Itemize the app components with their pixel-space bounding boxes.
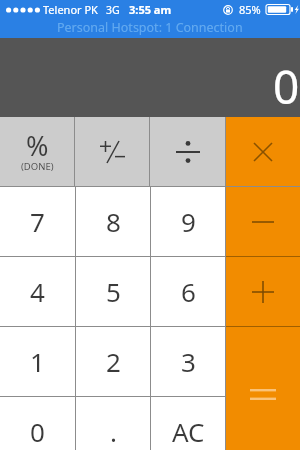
button[interactable]: 7 <box>0 187 75 256</box>
other: Minus <box>252 217 274 227</box>
staticText: Personal Hotspot: 1 Connection <box>57 19 243 36</box>
staticText: 3G <box>106 3 120 17</box>
staticText: 7 <box>30 204 45 239</box>
staticText: 3:55 am <box>129 2 172 17</box>
button[interactable]: 2 <box>76 327 150 396</box>
other: Plus minus <box>99 141 126 163</box>
staticText: 8 <box>106 204 121 239</box>
button[interactable]: 0 <box>0 397 75 450</box>
staticText: 0 <box>273 55 300 117</box>
staticText: (DONE) <box>21 160 54 173</box>
other: Equals <box>250 389 276 400</box>
staticText: AC <box>172 414 205 449</box>
staticText: 1 <box>30 344 45 379</box>
staticText: Telenor PK <box>43 2 98 17</box>
button[interactable]: Divide <box>150 117 225 186</box>
other: Plus <box>252 281 274 303</box>
other: Battery 85 percent charging <box>266 4 298 15</box>
staticText: 2 <box>106 344 121 379</box>
other: Divide <box>176 141 200 163</box>
other: Rotation lock <box>223 5 233 15</box>
staticText: 4 <box>30 274 45 309</box>
button[interactable]: AC <box>151 397 225 450</box>
button[interactable]: Plus <box>226 257 300 326</box>
staticText: 0 <box>30 414 45 449</box>
other: Multiply <box>254 143 272 161</box>
staticText: 3 <box>181 344 196 379</box>
button[interactable]: 1 <box>0 327 75 396</box>
staticText: 5 <box>106 274 121 309</box>
staticText: 85% <box>239 2 261 17</box>
button[interactable]: Plus minus <box>75 117 149 186</box>
staticText: 9 <box>181 204 196 239</box>
button[interactable]: Equals <box>226 327 300 450</box>
button[interactable]: Minus <box>226 187 300 256</box>
button[interactable]: 8 <box>76 187 150 256</box>
staticText: . <box>110 414 117 449</box>
button[interactable]: 4 <box>0 257 75 326</box>
button[interactable]: 9 <box>151 187 225 256</box>
staticText: 6 <box>181 274 196 309</box>
button[interactable]: % <box>0 117 74 186</box>
button[interactable]: Multiply <box>226 117 300 186</box>
button[interactable]: . <box>76 397 150 450</box>
staticText: % <box>26 127 49 164</box>
button[interactable]: 3 <box>151 327 225 396</box>
button[interactable]: 6 <box>151 257 225 326</box>
button[interactable]: 5 <box>76 257 150 326</box>
